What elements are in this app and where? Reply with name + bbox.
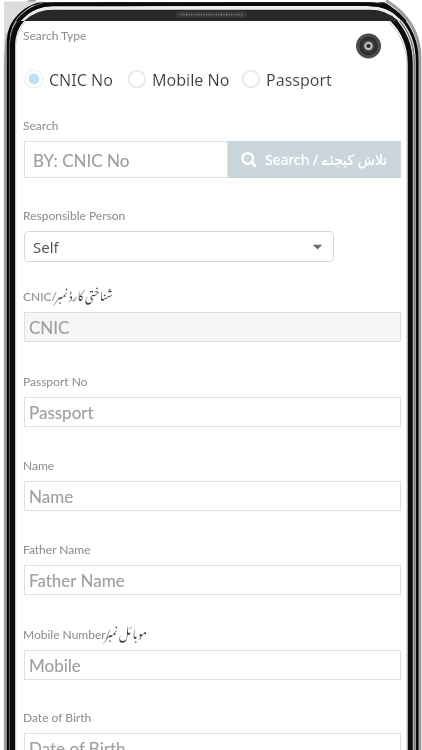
staticText: Father Name <box>23 542 91 556</box>
staticText: Self <box>33 237 59 257</box>
button[interactable]: BY: CNIC No <box>24 141 228 178</box>
staticText: Search <box>23 118 59 132</box>
button[interactable]: Passport <box>241 69 332 89</box>
staticText: Mobile <box>29 655 81 675</box>
button[interactable]: Date of Birth <box>24 733 401 750</box>
button[interactable]: Father Name <box>24 565 401 595</box>
staticText: Passport <box>266 69 332 89</box>
button[interactable]: CNIC <box>24 312 401 342</box>
staticText: Father Name <box>29 570 125 590</box>
staticText: Date of Birth <box>29 738 126 750</box>
staticText: CNIC No <box>49 69 113 89</box>
button[interactable]: Mobile No <box>127 69 230 89</box>
staticText: Mobile No <box>152 69 230 89</box>
staticText: Search Type <box>23 28 87 42</box>
staticText: Name <box>29 486 74 506</box>
button[interactable]: Self <box>24 231 334 262</box>
staticText: شناختی کارڈ نمبر <box>55 279 113 308</box>
staticText: Responsible Person <box>23 208 126 222</box>
staticText: CNIC <box>29 317 70 337</box>
button[interactable]: CNIC No <box>24 69 113 89</box>
button[interactable]: Search <box>228 141 401 178</box>
staticText: Name <box>23 458 55 472</box>
staticText: Search / تلاش کیجئے <box>265 150 388 169</box>
button[interactable]: Passport <box>24 397 401 427</box>
staticText: Date of Birth <box>23 710 92 724</box>
other: Search <box>241 152 257 168</box>
button[interactable]: Name <box>24 481 401 511</box>
staticText: Mobile Number/ <box>23 627 111 641</box>
staticText: موبائل نمبر <box>105 617 147 646</box>
staticText: Passport No <box>23 374 88 388</box>
staticText: CNIC/ <box>23 289 57 303</box>
button[interactable]: Mobile <box>24 650 401 680</box>
staticText: Passport <box>29 402 94 422</box>
staticText: BY: CNIC No <box>33 150 130 170</box>
